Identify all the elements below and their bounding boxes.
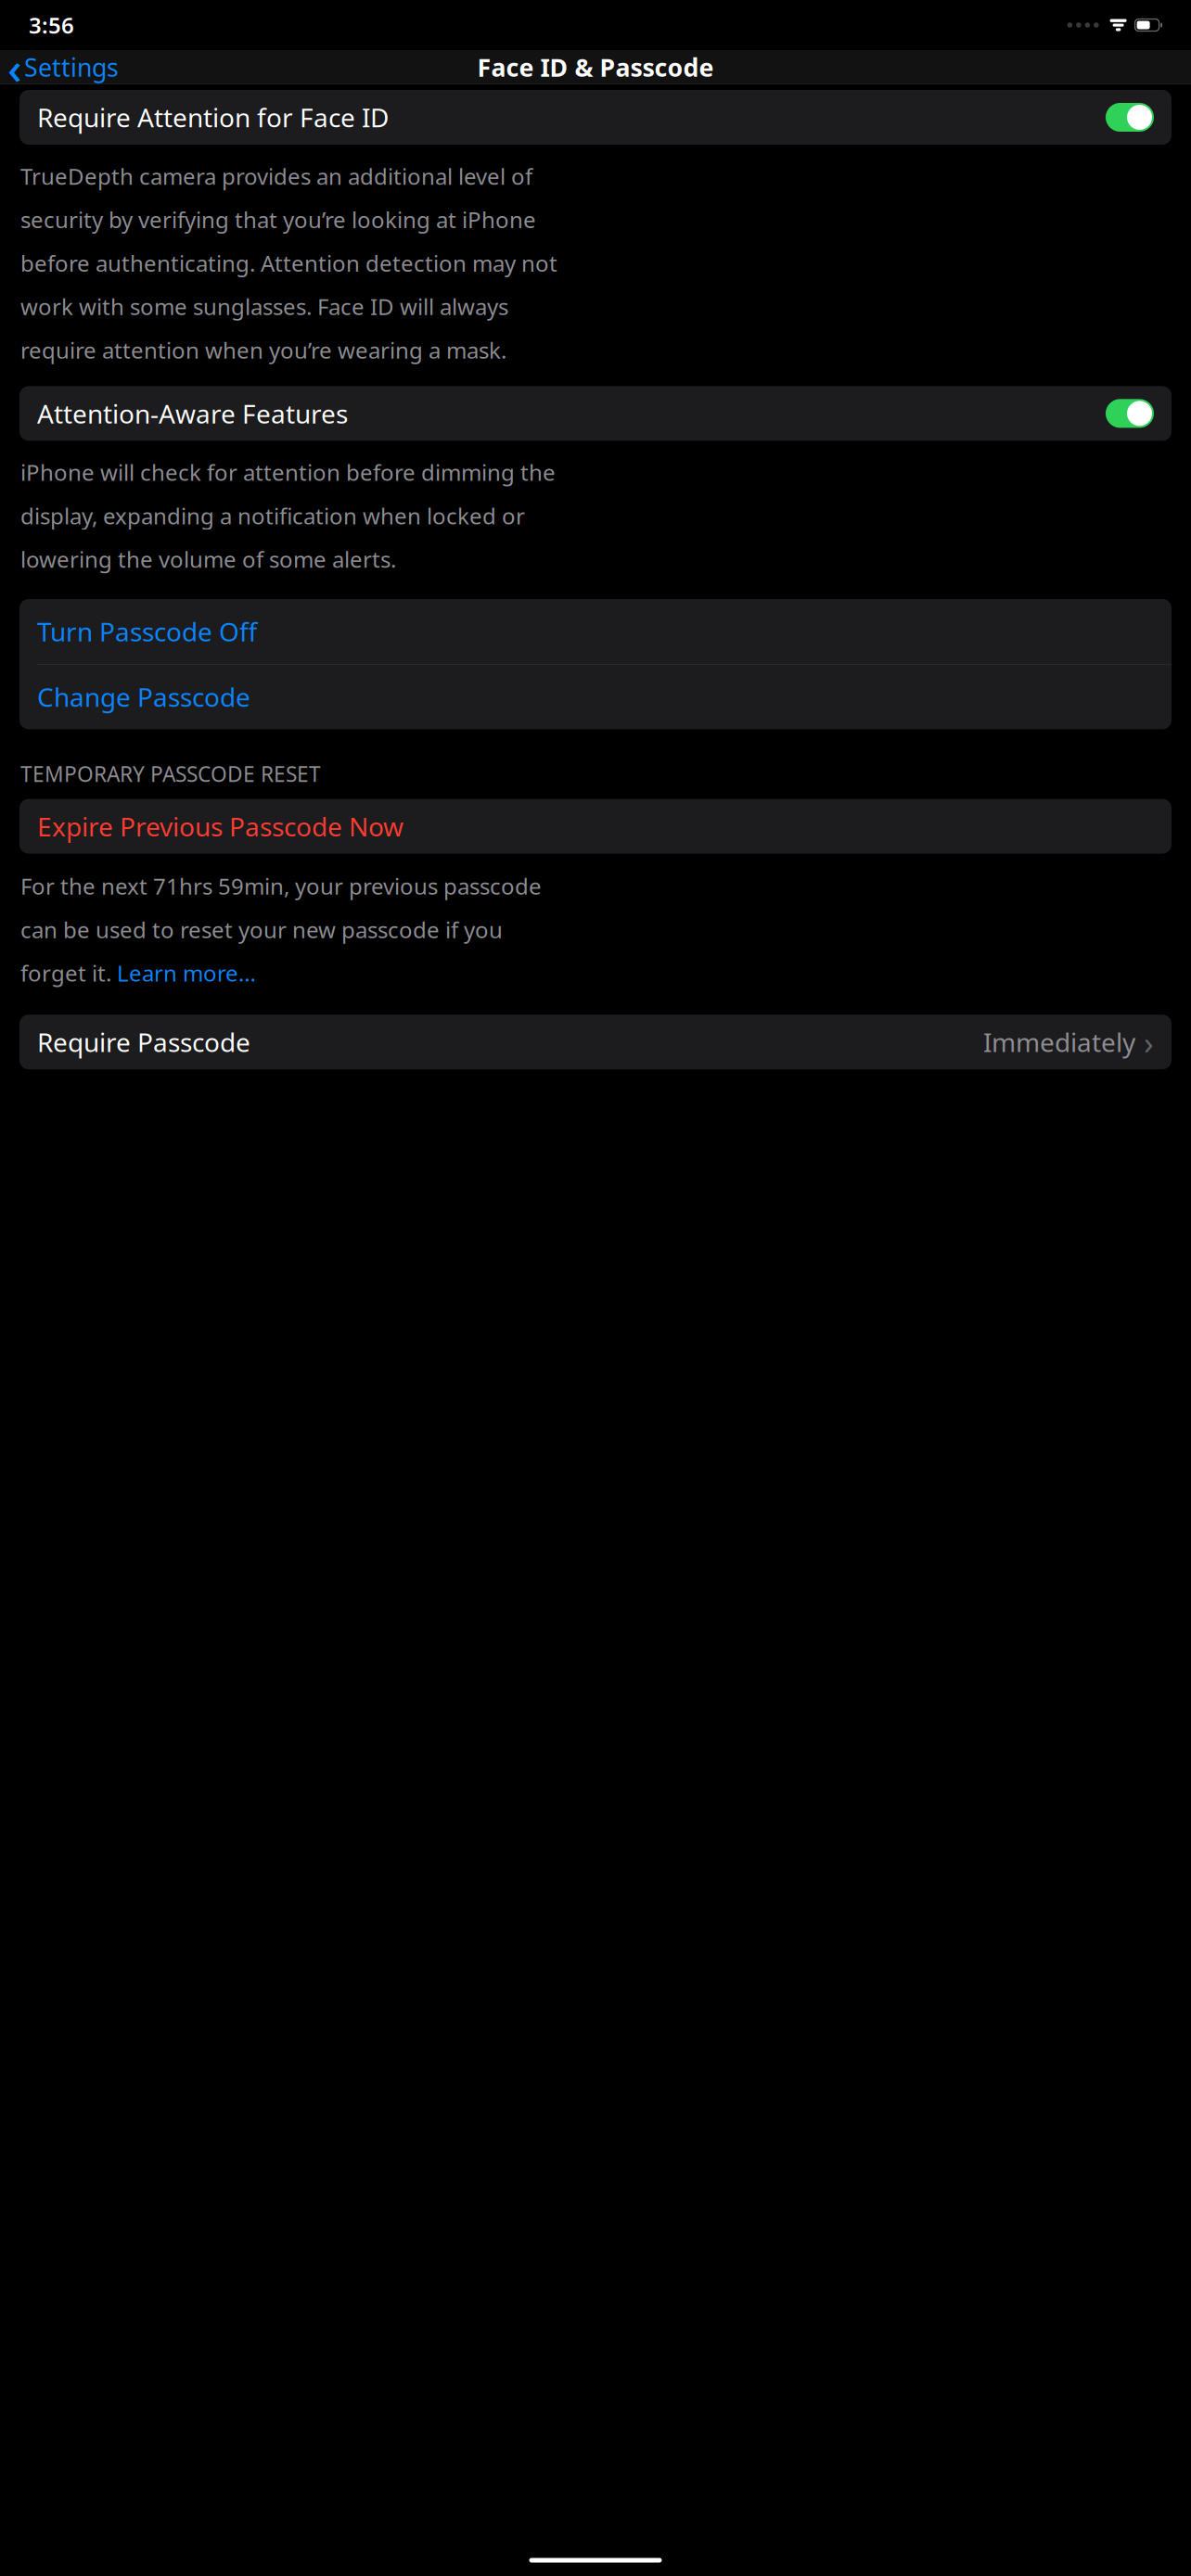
button[interactable]: ‹ [0, 34, 128, 100]
button[interactable]: Expire Previous Passcode Now [19, 799, 1172, 854]
staticText: 3:56 [29, 10, 74, 40]
staticText: › [1144, 1021, 1154, 1063]
staticText: TrueDepth camera provides an additional … [20, 161, 532, 191]
button[interactable]: Turn Passcode Off [19, 599, 1172, 664]
button[interactable]: Require Attention for Face ID [19, 90, 1172, 145]
staticText: security by verifying that you’re lookin… [20, 205, 536, 234]
staticText: work with some sunglasses. Face ID will … [20, 292, 508, 321]
staticText: Change Passcode [37, 680, 250, 714]
staticText: TEMPORARY PASSCODE RESET [20, 760, 321, 788]
staticText: display, expanding a notification when l… [20, 501, 525, 531]
staticText: Expire Previous Passcode Now [37, 809, 403, 844]
staticText: For the next 71hrs 59min, your previous … [20, 871, 542, 901]
staticText: require attention when you’re wearing a … [20, 335, 506, 365]
staticText: Turn Passcode Off [37, 614, 257, 649]
staticText: Require Passcode [37, 1025, 250, 1059]
staticText: before authenticating. Attention detecti… [20, 248, 557, 278]
staticText: Learn more… [117, 958, 256, 988]
button[interactable]: Change Passcode [19, 664, 1172, 729]
staticText: can be used to reset your new passcode i… [20, 915, 503, 944]
staticText: lowering the volume of some alerts. [20, 544, 396, 574]
button[interactable]: Attention-Aware Features [19, 386, 1172, 441]
button[interactable]: Require Passcode [19, 1015, 1172, 1069]
staticText: Settings [24, 51, 119, 84]
staticText: Attention-Aware Features [37, 396, 348, 431]
staticText: ‹ [7, 38, 22, 97]
staticText: Immediately [983, 1025, 1135, 1059]
staticText: forget it. [20, 958, 117, 988]
staticText: iPhone will check for attention before d… [20, 458, 556, 487]
button[interactable]: Learn more… [117, 958, 256, 988]
staticText: Face ID & Passcode [477, 51, 714, 84]
staticText: Require Attention for Face ID [37, 100, 389, 135]
